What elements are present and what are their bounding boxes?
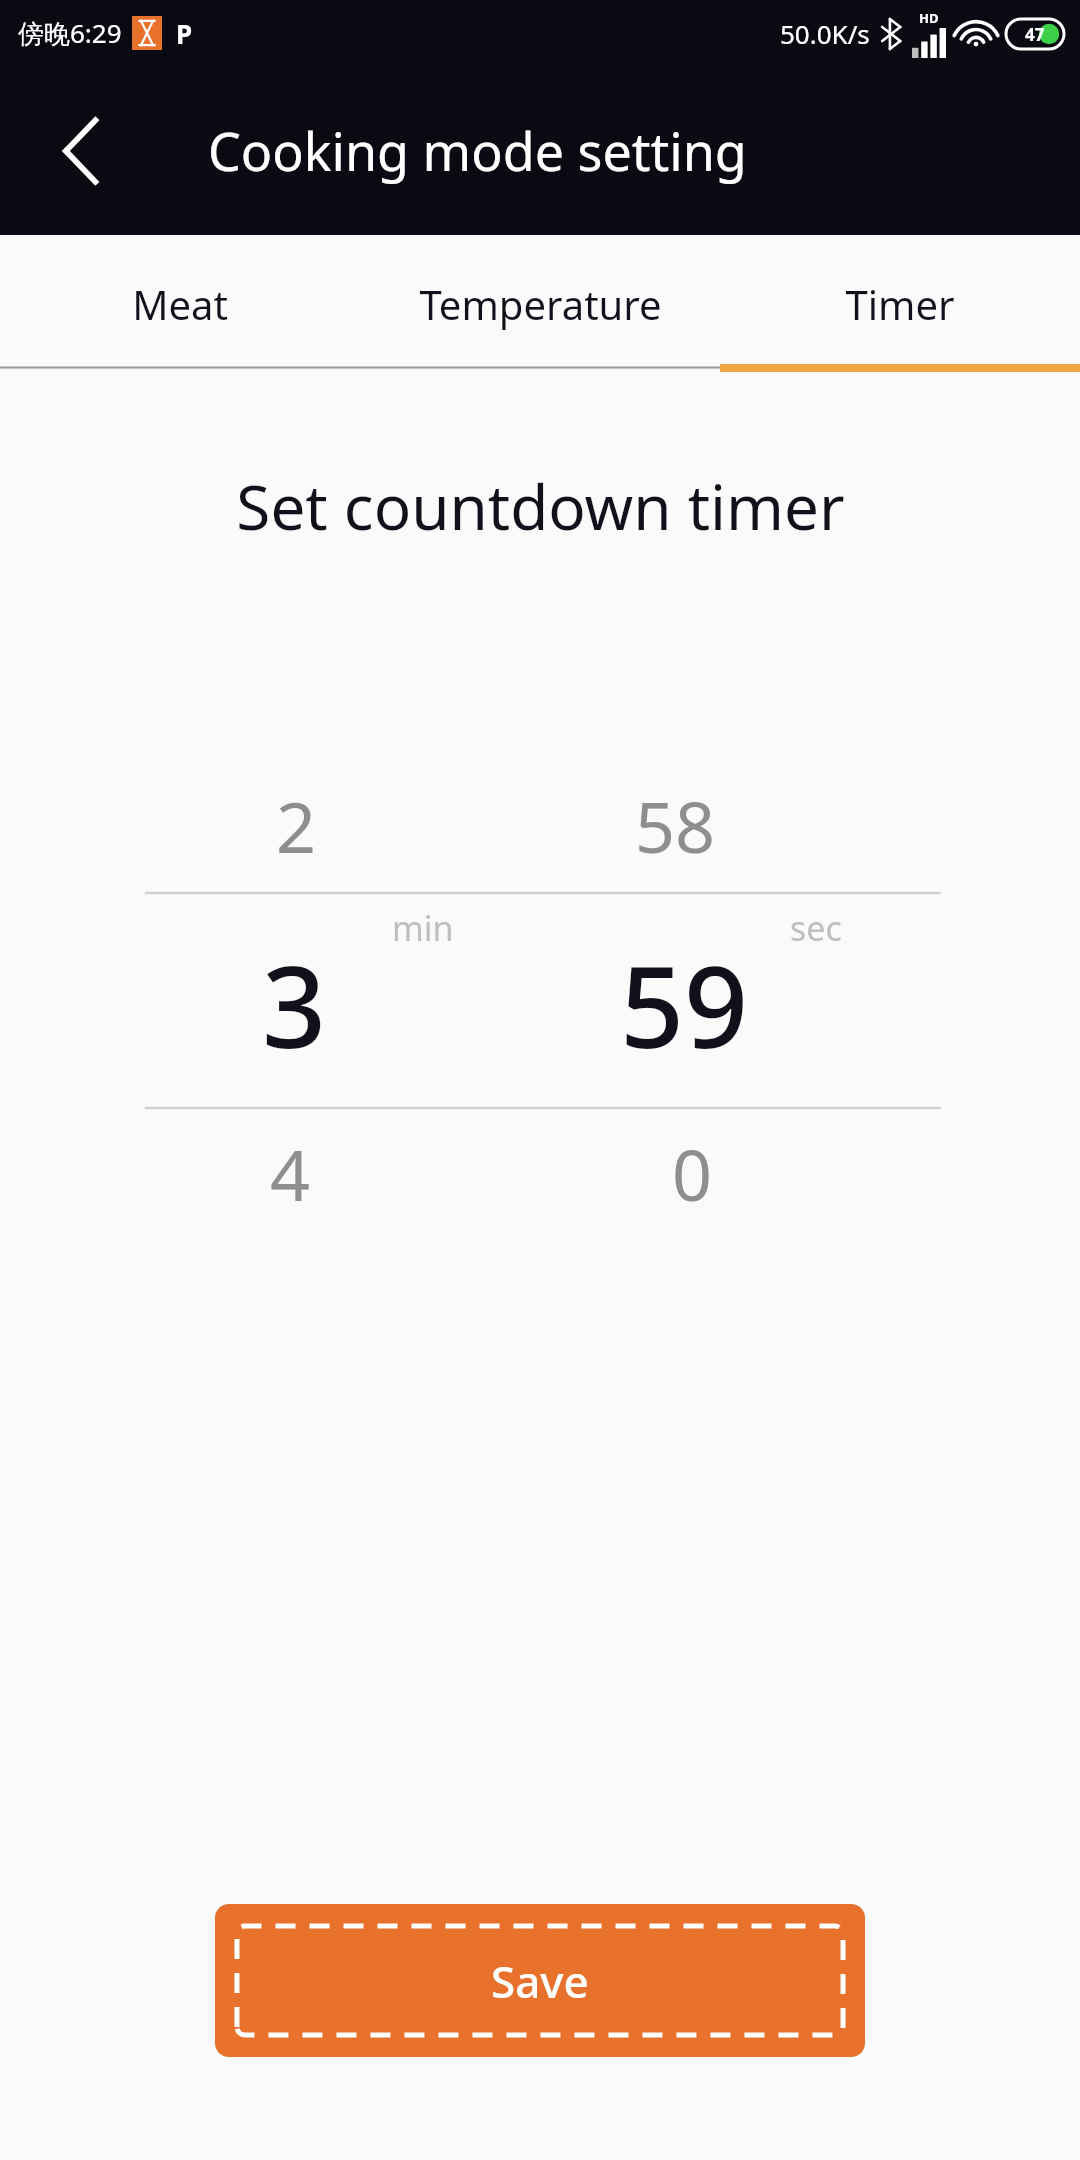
staticText: 3 — [262, 928, 327, 1081]
button[interactable]: Meat — [0, 235, 360, 372]
staticText: HD — [919, 9, 939, 27]
staticText: 58 — [635, 778, 716, 873]
staticText: Timer — [845, 277, 955, 331]
button[interactable]: Timer — [720, 235, 1080, 372]
staticText: 傍晚6:29 — [18, 15, 122, 51]
staticText: Save — [491, 1951, 589, 2011]
button[interactable]: Save — [215, 1904, 865, 2057]
staticText: 4 — [270, 1126, 311, 1221]
staticText: 47 — [1025, 23, 1045, 46]
staticText: 59 — [620, 928, 749, 1081]
button[interactable]: Temperature — [360, 235, 720, 372]
staticText: Cooking mode setting — [208, 115, 747, 186]
staticText: 2 — [276, 778, 317, 873]
staticText: Set countdown timer — [236, 464, 845, 548]
staticText: sec — [790, 905, 842, 951]
staticText: 0 — [672, 1126, 713, 1221]
button[interactable]: 3 — [0, 893, 1080, 1108]
staticText: 50.0K/s — [780, 16, 870, 51]
staticText: P — [176, 16, 193, 51]
staticText: Temperature — [419, 277, 662, 331]
staticText: Meat — [132, 277, 228, 331]
staticText: min — [392, 905, 454, 951]
button[interactable]: Back — [30, 101, 130, 201]
